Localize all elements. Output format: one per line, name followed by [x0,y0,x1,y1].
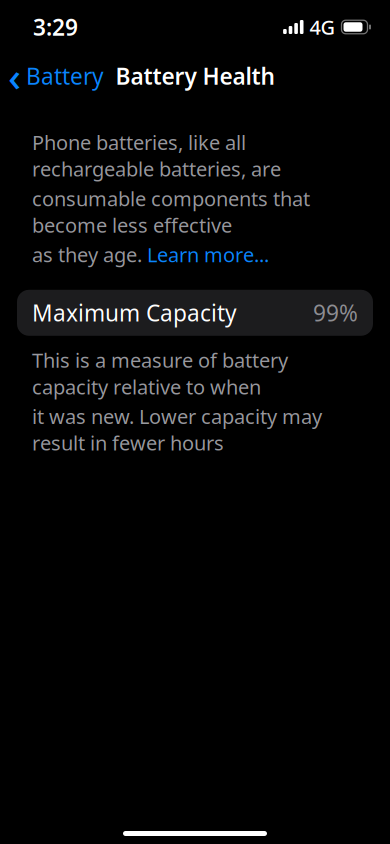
staticText: consumable components that become less e… [32,185,310,238]
staticText: Battery Health [115,61,274,91]
button[interactable]: Learn more... [147,241,269,268]
staticText: 99% [313,298,358,328]
staticText: To reduce battery aging, iPhone learns f… [32,807,325,844]
button[interactable]: ‹ [0,43,114,108]
staticText: it was new. Lower capacity may result in… [32,403,322,456]
staticText: Phone batteries, like all rechargeable b… [32,129,281,182]
staticText: 3:29 [33,12,78,42]
staticText: ‹ [8,49,21,102]
staticText: 4G [309,14,335,40]
staticText: Learn more... [147,241,269,268]
staticText: Battery [26,61,104,91]
staticText: This is a measure of battery capacity re… [32,347,288,400]
staticText: Maximum Capacity [32,298,237,328]
button[interactable]: Maximum Capacity [0,290,390,336]
staticText: as they age. [32,241,147,268]
